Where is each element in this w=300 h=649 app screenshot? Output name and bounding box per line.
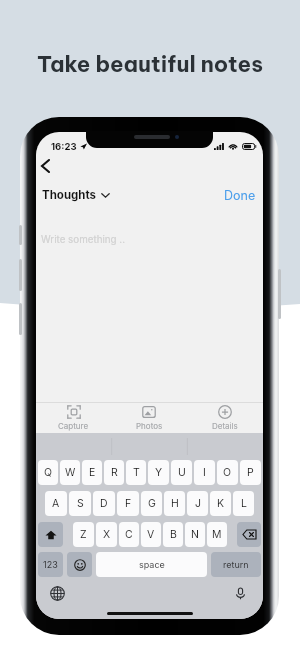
button[interactable]: J [187,491,208,516]
button[interactable]: Done [222,186,258,205]
button[interactable]: D [93,491,115,516]
staticText: Take beautiful notes [37,50,263,78]
staticText: D [100,497,108,510]
button[interactable]: Z [73,522,94,547]
staticText: B [170,528,177,541]
button[interactable]: E [82,460,102,485]
staticText: Y [155,466,163,479]
staticText: E [89,466,96,479]
button[interactable]: P [240,460,261,485]
button[interactable]: V [141,522,161,547]
button[interactable]: R [104,460,124,485]
button[interactable]: N [185,522,205,547]
button[interactable]: Thoughts [40,186,112,204]
button[interactable]: Backspace [237,522,261,547]
button[interactable]: G [141,491,162,516]
staticText: A [52,497,60,510]
staticText: return [223,559,249,570]
staticText: Details [212,421,238,431]
staticText: Photos [136,421,163,431]
button[interactable]: H [164,491,185,516]
staticText: G [148,497,156,510]
button[interactable]: U [171,460,192,485]
staticText: C [125,528,133,541]
button[interactable]: I [194,460,215,485]
staticText: T [133,466,140,479]
staticText: M [212,528,222,541]
button[interactable]: Details [187,403,263,433]
staticText: O [223,466,232,479]
staticText: Thoughts [42,188,97,202]
staticText: R [111,466,118,479]
staticText: 123 [43,559,58,570]
staticText: P [247,466,254,479]
staticText: N [191,528,199,541]
button[interactable]: M [207,522,227,547]
staticText: H [171,497,179,510]
staticText: space [139,559,165,570]
staticText: W [65,466,76,479]
button[interactable]: O [217,460,238,485]
button[interactable]: space [96,552,207,577]
button[interactable]: K [210,491,231,516]
button[interactable]: return [211,552,261,577]
button[interactable]: Q [38,460,58,485]
button[interactable]: Back [36,153,58,179]
button[interactable]: F [117,491,139,516]
button[interactable]: 123 [38,552,63,577]
button[interactable]: Dictate [230,583,250,603]
button[interactable]: T [126,460,146,485]
staticText: F [125,497,132,510]
button[interactable]: Capture [36,403,111,433]
staticText: Capture [58,421,89,431]
staticText: V [147,528,155,541]
staticText: S [77,497,84,510]
button[interactable]: Photos [111,403,187,433]
staticText: L [241,497,247,510]
button[interactable]: C [119,522,139,547]
button[interactable]: W [60,460,80,485]
button[interactable]: Emoji [67,552,92,577]
button[interactable]: Change language [47,583,67,603]
staticText: J [195,497,201,510]
button[interactable]: B [163,522,183,547]
button[interactable]: A [45,491,67,516]
staticText: I [203,466,206,479]
button[interactable]: S [69,491,91,516]
button[interactable]: Shift [38,522,63,547]
staticText: Z [80,528,87,541]
staticText: 16:23 [51,141,77,152]
staticText: U [178,466,186,479]
staticText: Q [44,466,53,479]
staticText: K [217,497,225,510]
staticText: Done [224,188,256,203]
button[interactable]: Y [148,460,169,485]
button[interactable]: X [96,522,117,547]
staticText: Write something .. [41,234,126,246]
button[interactable]: L [233,491,254,516]
staticText: X [103,528,111,541]
